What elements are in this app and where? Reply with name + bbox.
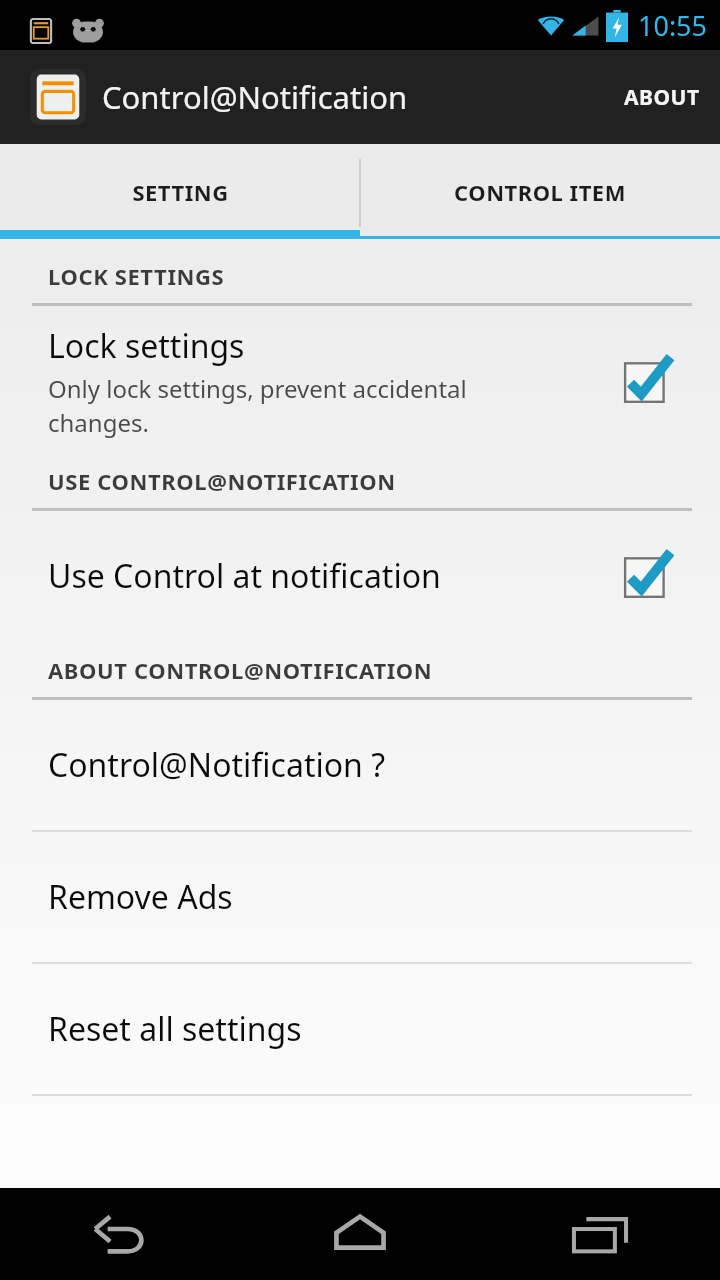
staticText: Use Control at notification: [48, 554, 441, 598]
button[interactable]: Home: [240, 1188, 480, 1280]
button[interactable]: Use Control at notification: [0, 511, 720, 641]
staticText: ABOUT CONTROL@NOTIFICATION: [48, 655, 433, 685]
staticText: LOCK SETTINGS: [48, 261, 225, 291]
button[interactable]: Control@Notification ?: [0, 700, 720, 830]
button[interactable]: Lock settings: [0, 306, 720, 456]
staticText: ABOUT: [624, 83, 700, 112]
staticText: Control@Notification ?: [48, 743, 386, 787]
staticText: Only lock settings, prevent accidental c…: [48, 372, 467, 439]
staticText: Control@Notification: [102, 76, 408, 118]
button[interactable]: Back: [0, 1188, 240, 1280]
button[interactable]: CONTROL ITEM: [360, 144, 720, 239]
staticText: 10:55: [638, 7, 708, 44]
staticText: Remove Ads: [48, 875, 233, 919]
button[interactable]: Recent apps: [480, 1188, 720, 1280]
button[interactable]: ABOUT: [604, 50, 720, 144]
staticText: Reset all settings: [48, 1007, 302, 1051]
staticText: Lock settings: [48, 324, 245, 368]
button[interactable]: Reset all settings: [0, 964, 720, 1094]
staticText: USE CONTROL@NOTIFICATION: [48, 466, 396, 496]
staticText: SETTING: [132, 177, 229, 207]
button[interactable]: Remove Ads: [0, 832, 720, 962]
button[interactable]: SETTING: [0, 144, 360, 239]
staticText: CONTROL ITEM: [454, 177, 626, 207]
